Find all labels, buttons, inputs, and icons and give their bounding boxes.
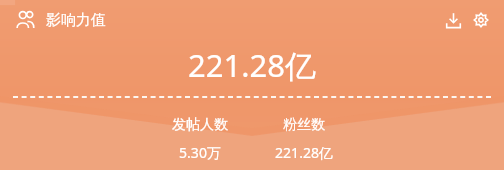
staticText: 5.30万 (179, 143, 221, 162)
staticText: 发帖人数 (172, 116, 228, 134)
button[interactable]: 设置 (468, 7, 494, 33)
staticText: 影响力值 (46, 11, 106, 30)
button[interactable]: 粉丝数 (256, 102, 352, 162)
staticText: 221.28亿 (275, 143, 333, 162)
staticText: 粉丝数 (283, 116, 325, 134)
button[interactable]: 下载 (440, 7, 466, 33)
button[interactable]: 影响力值 (13, 8, 37, 32)
staticText: 221.28亿 (188, 44, 316, 86)
button[interactable]: 发帖人数 (152, 102, 248, 162)
